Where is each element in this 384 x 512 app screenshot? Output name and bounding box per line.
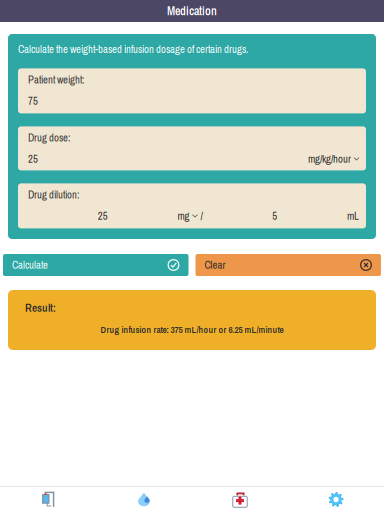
staticText: Medication bbox=[167, 3, 217, 19]
staticText: Drug dilution: bbox=[28, 187, 79, 202]
staticText: Drug infusion rate: 375 mL/hour or 6.25 … bbox=[100, 323, 283, 336]
staticText: Calculate bbox=[12, 258, 48, 272]
button[interactable]: Calculate bbox=[3, 254, 188, 276]
button[interactable]: Clear bbox=[195, 254, 381, 276]
staticText: Clear bbox=[204, 258, 225, 272]
staticText: Calculate the weight-based infusion dosa… bbox=[18, 42, 248, 56]
staticText: 25 bbox=[98, 209, 108, 223]
button[interactable]: Fluids bbox=[96, 487, 192, 512]
staticText: mg/kg/hour bbox=[308, 152, 351, 166]
staticText: Patient weight: bbox=[28, 72, 84, 87]
button[interactable]: mg bbox=[177, 209, 202, 223]
staticText: Result: bbox=[25, 300, 56, 315]
staticText: 5 bbox=[272, 209, 277, 223]
staticText: mL bbox=[347, 209, 359, 223]
staticText: 75 bbox=[28, 94, 38, 108]
staticText: Drug dose: bbox=[28, 130, 70, 145]
button[interactable]: Settings bbox=[288, 487, 384, 512]
button[interactable]: Infusion bbox=[0, 487, 96, 512]
button[interactable]: mg/kg/hour bbox=[308, 152, 359, 166]
staticText: 25 bbox=[28, 152, 38, 166]
staticText: / bbox=[200, 209, 202, 223]
staticText: mg bbox=[177, 209, 189, 223]
button[interactable]: Medication bbox=[192, 487, 288, 512]
